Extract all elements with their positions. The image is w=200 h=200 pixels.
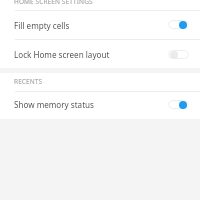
button[interactable]: Show memory status bbox=[0, 91, 200, 118]
button[interactable] bbox=[168, 20, 189, 29]
button[interactable]: Lock Home screen layout bbox=[0, 41, 200, 68]
button[interactable] bbox=[168, 100, 189, 109]
staticText: RECENTS bbox=[14, 77, 43, 86]
button[interactable] bbox=[168, 50, 189, 59]
button[interactable]: Fill empty cells bbox=[0, 11, 200, 39]
staticText: Fill empty cells bbox=[14, 20, 200, 31]
staticText: Show memory status bbox=[14, 99, 200, 110]
staticText: Lock Home screen layout bbox=[14, 49, 200, 60]
staticText: HOME SCREEN SETTINGS bbox=[14, 0, 93, 6]
